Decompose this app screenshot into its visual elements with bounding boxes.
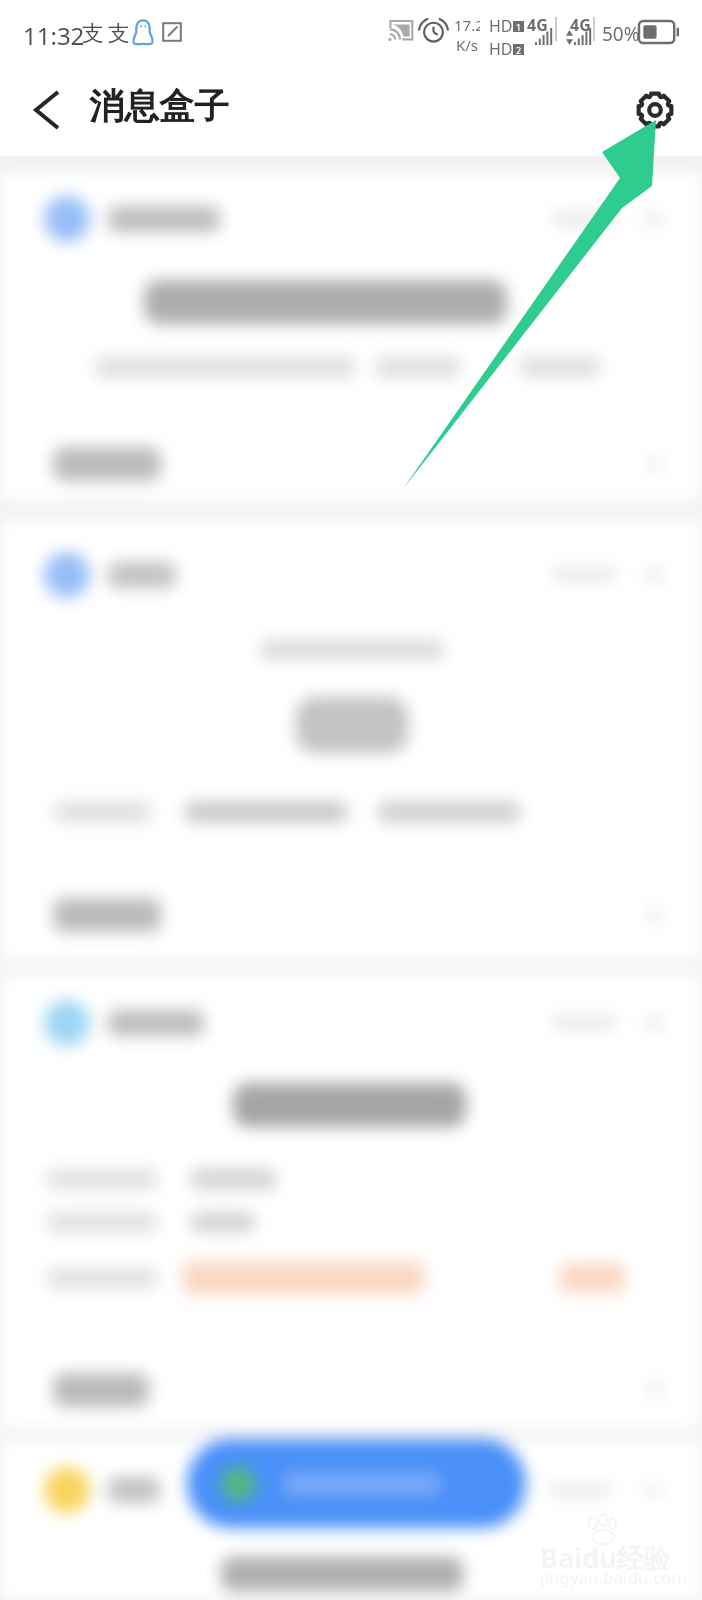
button[interactable]: Back [12, 70, 82, 150]
staticText: 2 [516, 44, 522, 55]
button[interactable] [0, 172, 702, 501]
button[interactable] [0, 975, 702, 1428]
staticText: 1 [516, 21, 522, 32]
staticText: HD [489, 15, 513, 37]
staticText: 11:32 [23, 19, 85, 52]
button[interactable] [0, 520, 702, 960]
staticText: 50% [602, 21, 640, 47]
button[interactable]: 消息盒子 [89, 84, 229, 128]
staticText: K/s [456, 35, 479, 55]
button[interactable]: Settings [610, 70, 700, 150]
button[interactable] [187, 1439, 526, 1528]
staticText: jingyan.baidu.com [540, 1566, 688, 1589]
staticText: 17.2 [454, 15, 480, 35]
staticText: 支 [108, 20, 130, 48]
staticText: 4G [527, 14, 548, 36]
staticText: Baidu经验 [540, 1539, 671, 1576]
staticText: 支 [82, 20, 104, 48]
staticText: 4G [570, 14, 591, 36]
staticText: HD [489, 38, 513, 60]
staticText: 消息盒子 [89, 84, 229, 128]
button[interactable] [0, 1440, 702, 1600]
